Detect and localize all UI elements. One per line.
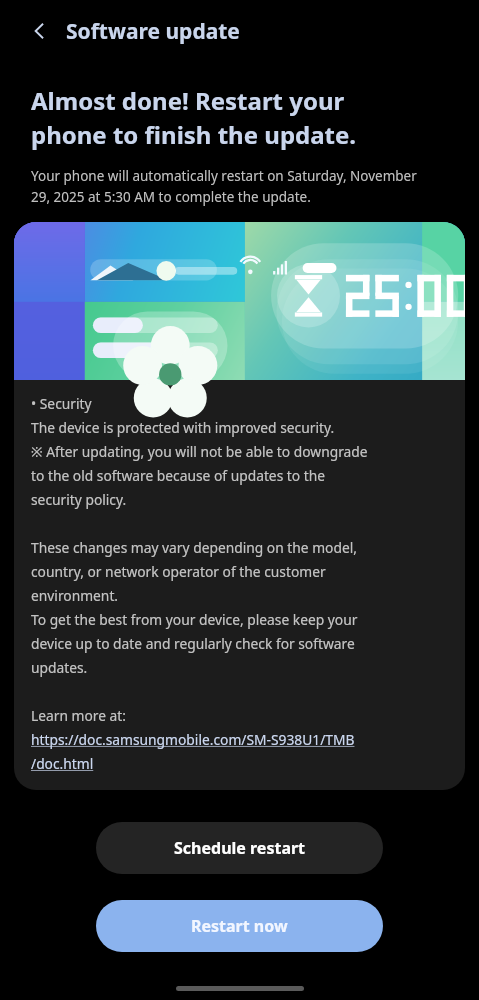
staticText: Your phone will automatically restart on… bbox=[31, 167, 417, 206]
staticText: Schedule restart bbox=[174, 837, 306, 859]
button[interactable]: Restart now bbox=[96, 900, 383, 952]
button[interactable]: Back bbox=[22, 13, 58, 49]
staticText: Restart now bbox=[191, 915, 288, 937]
staticText: Software update bbox=[66, 17, 240, 46]
button[interactable]: Schedule restart bbox=[96, 822, 383, 874]
staticText: • Security The device is protected with … bbox=[31, 394, 368, 773]
staticText: Almost done! Restart your phone to finis… bbox=[31, 84, 357, 151]
